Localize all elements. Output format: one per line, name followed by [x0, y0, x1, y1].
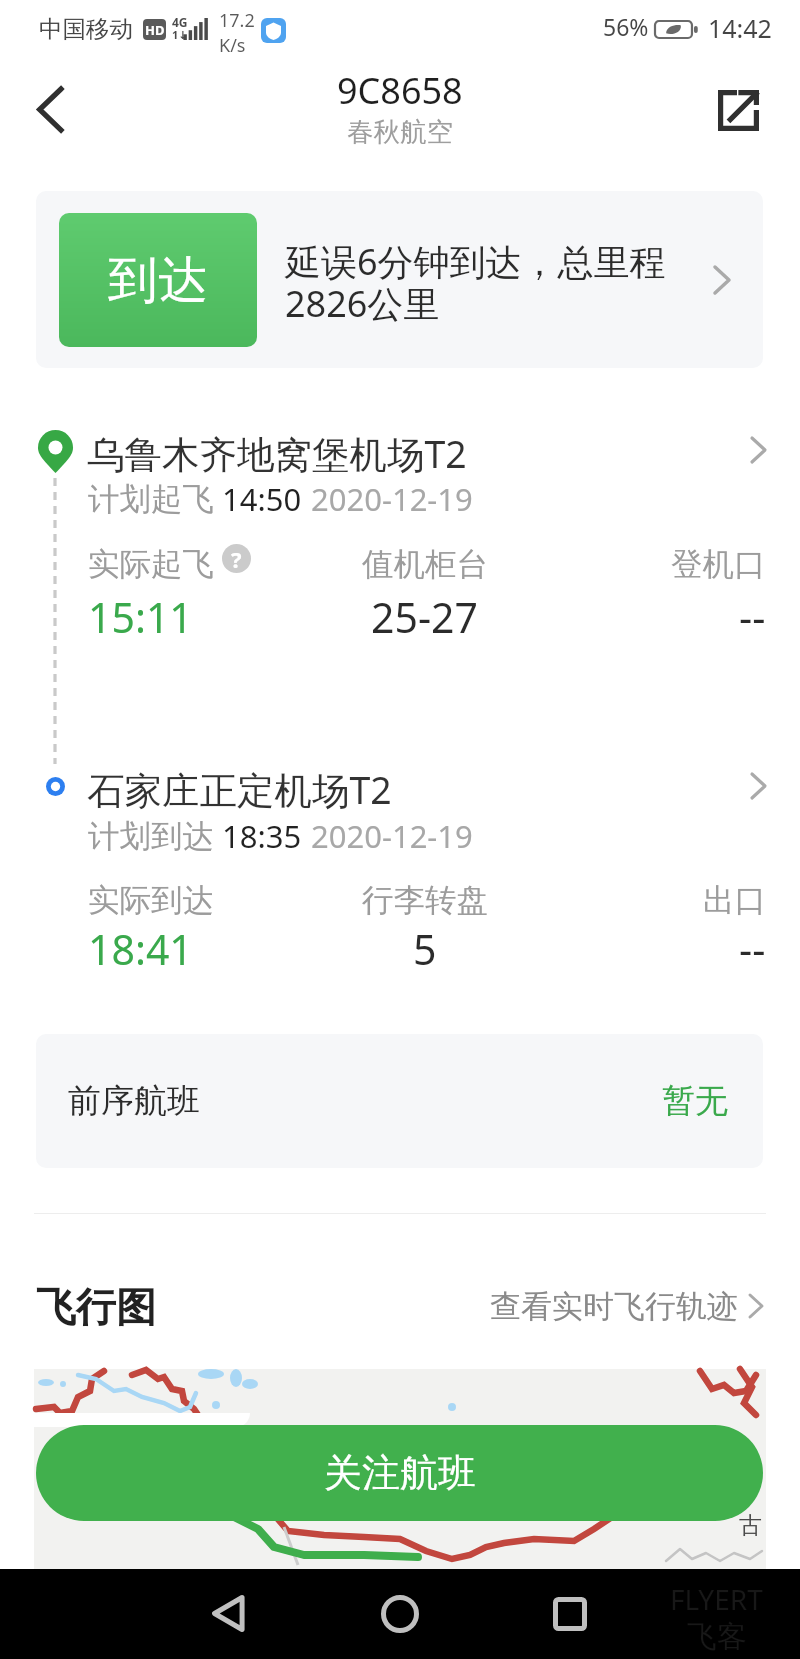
staticText: 前序航班 [68, 1080, 200, 1122]
staticText: 中国移动 [39, 14, 133, 44]
staticText: 查看实时飞行轨迹 [490, 1287, 738, 1326]
staticText: 18:41 [88, 921, 193, 977]
staticText: 出口 [703, 881, 766, 921]
staticText: 14:42 [708, 11, 772, 45]
staticText: 14:50 [222, 478, 302, 520]
staticText: HD [145, 21, 165, 39]
staticText: 2020-12-19 [311, 815, 473, 857]
button[interactable]: 关注航班 [36, 1425, 763, 1521]
staticText: 9C8658 [337, 66, 463, 115]
staticText: 计划起飞 [88, 480, 214, 520]
staticText: 17.2 [219, 8, 255, 33]
staticText: 乌鲁木齐地窝堡机场T2 [87, 428, 467, 479]
staticText: 到达 [108, 249, 208, 312]
button[interactable]: Recent apps [535, 1572, 605, 1655]
staticText: 春秋航空 [347, 115, 453, 148]
button[interactable]: Back [193, 1572, 263, 1655]
staticText: 飞行图 [36, 1282, 156, 1332]
staticText: 15:11 [88, 589, 193, 645]
staticText: 值机柜台 [362, 545, 488, 585]
staticText: 4G [172, 14, 188, 30]
staticText: 5 [413, 921, 437, 977]
button[interactable]: Home [365, 1572, 435, 1655]
staticText: -- [739, 921, 766, 977]
staticText: 古 [739, 1511, 762, 1540]
staticText: 行李转盘 [362, 881, 488, 921]
staticText: 石家庄正定机场T2 [87, 764, 392, 815]
staticText: FLYERT [670, 1580, 763, 1618]
staticText: 延误6分钟到达，总里程2826公里 [285, 237, 681, 328]
staticText: 实际起飞 [88, 545, 214, 585]
staticText: 56% [603, 11, 649, 42]
staticText: 18:35 [222, 815, 302, 857]
button[interactable]: 查看实时飞行轨迹 [490, 1286, 762, 1326]
staticText: 关注航班 [324, 1449, 476, 1497]
staticText: 1↓ [172, 27, 188, 42]
button[interactable]: 前序航班 [36, 1034, 763, 1168]
staticText: 实际到达 [88, 881, 214, 921]
staticText: K/s [219, 33, 246, 58]
staticText: ? [231, 544, 242, 573]
staticText: 飞客 [687, 1618, 747, 1656]
button[interactable]: Back [12, 72, 86, 146]
button[interactable]: Share [700, 72, 776, 148]
staticText: -- [739, 589, 766, 645]
staticText: 登机口 [671, 545, 766, 585]
staticText: 计划到达 [88, 817, 214, 857]
button[interactable]: 乌鲁木齐地窝堡机场T2 [36, 426, 763, 478]
button[interactable]: 到达 [36, 191, 763, 368]
button[interactable]: 石家庄正定机场T2 [36, 762, 763, 814]
staticText: 2020-12-19 [311, 478, 473, 520]
staticText: 暂无 [662, 1080, 728, 1122]
staticText: 25-27 [371, 589, 479, 645]
